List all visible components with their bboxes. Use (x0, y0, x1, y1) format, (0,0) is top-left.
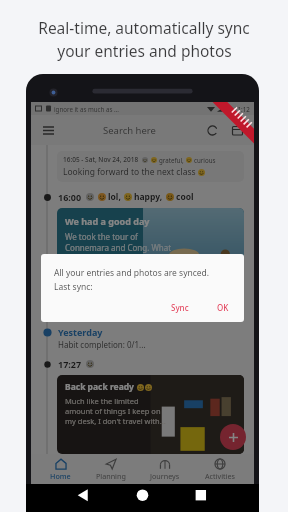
staticText: Search here (103, 124, 156, 137)
staticText: cool (176, 191, 194, 203)
staticText: ignore it as much as ... (54, 105, 120, 113)
button[interactable]: Home (44, 456, 77, 483)
staticText: grateful, (159, 156, 184, 164)
button[interactable]: Calendar (228, 121, 246, 139)
staticText: We took the tour of (65, 231, 138, 242)
staticText: your entries and photos (57, 40, 232, 61)
staticText: 16:00 (58, 191, 82, 203)
button[interactable]: Sync (164, 299, 196, 316)
staticText: Sync (171, 302, 189, 313)
button[interactable]: Sync (203, 121, 221, 139)
staticText: 17:27 (58, 358, 82, 370)
button[interactable]: Add entry (220, 424, 246, 450)
staticText: Connemara and Cong. What (65, 242, 172, 253)
staticText: Home (50, 471, 71, 481)
staticText: 16:05 - Sat, Nov 24, 2018 (63, 155, 139, 164)
button[interactable]: Planning (90, 456, 132, 483)
staticText: All your entries and photos are synced. (54, 267, 210, 279)
button[interactable]: Back pack ready (57, 375, 244, 454)
staticText: Much like the limited (65, 396, 139, 406)
staticText: Yesterday (58, 326, 103, 338)
staticText: Habit completion: 0/1... (58, 339, 146, 350)
button[interactable]: OK (210, 299, 236, 316)
staticText: Activities (205, 471, 235, 481)
staticText: We had a good day (65, 215, 150, 227)
button[interactable]: Menu (39, 121, 57, 139)
button[interactable]: Activities (199, 456, 241, 483)
staticText: 11:12 (234, 105, 250, 113)
staticText: curious (194, 156, 216, 164)
staticText: OK (217, 302, 229, 313)
staticText: lol, (108, 191, 121, 203)
staticText: Journeys (150, 471, 180, 481)
staticText: Looking forward to the next class (63, 166, 196, 178)
staticText: happy, (134, 191, 163, 203)
button[interactable]: Yesterday (43, 326, 254, 350)
staticText: a wonderful way to spend ... (65, 253, 171, 264)
staticText: my desk, I don't travel with... (65, 416, 166, 426)
button[interactable]: We had a good day (57, 208, 244, 300)
staticText: Last sync: (54, 281, 93, 293)
staticText: Real-time, automatically sync (38, 17, 250, 38)
staticText: Planning (96, 471, 126, 481)
button[interactable]: 16:05 - Sat, Nov 24, 2018 (57, 151, 244, 182)
button[interactable]: Journeys (144, 456, 186, 483)
staticText: amount of things I keep on (65, 406, 161, 416)
staticText: Back pack ready (65, 381, 134, 393)
